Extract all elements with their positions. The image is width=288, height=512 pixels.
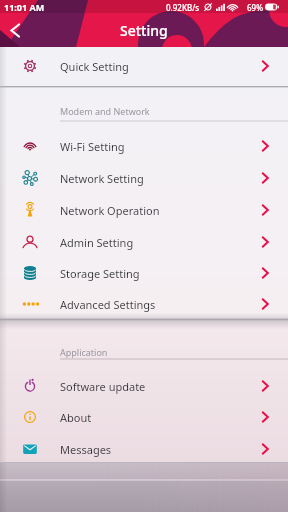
- button[interactable]: Storage Setting: [0, 257, 288, 289]
- button[interactable]: About: [0, 401, 288, 433]
- staticText: 11:01 AM: [4, 1, 45, 13]
- staticText: Storage Setting: [60, 266, 140, 281]
- staticText: Modem and Network: [60, 105, 150, 117]
- staticText: 69%: [247, 2, 263, 13]
- staticText: 0.92KB/s: [166, 2, 200, 13]
- button[interactable]: Quick Setting: [0, 50, 288, 82]
- staticText: About: [60, 410, 92, 425]
- button[interactable]: Software update: [0, 370, 288, 402]
- staticText: Admin Setting: [60, 235, 134, 250]
- staticText: Messages: [60, 442, 112, 457]
- staticText: Wi-Fi Setting: [60, 139, 125, 154]
- staticText: Network Setting: [60, 171, 144, 186]
- staticText: Application: [60, 346, 108, 358]
- button[interactable]: [0, 16, 30, 44]
- staticText: Advanced Settings: [60, 297, 156, 312]
- staticText: Network Operation: [60, 203, 160, 218]
- staticText: Quick Setting: [60, 59, 129, 74]
- button[interactable]: Wi-Fi Setting: [0, 130, 288, 162]
- button[interactable]: Network Setting: [0, 162, 288, 194]
- button[interactable]: Advanced Settings: [0, 288, 288, 320]
- button[interactable]: Network Operation: [0, 194, 288, 226]
- button[interactable]: Messages: [0, 433, 288, 465]
- button[interactable]: Admin Setting: [0, 226, 288, 258]
- staticText: Setting: [120, 21, 168, 40]
- staticText: Software update: [60, 379, 146, 394]
